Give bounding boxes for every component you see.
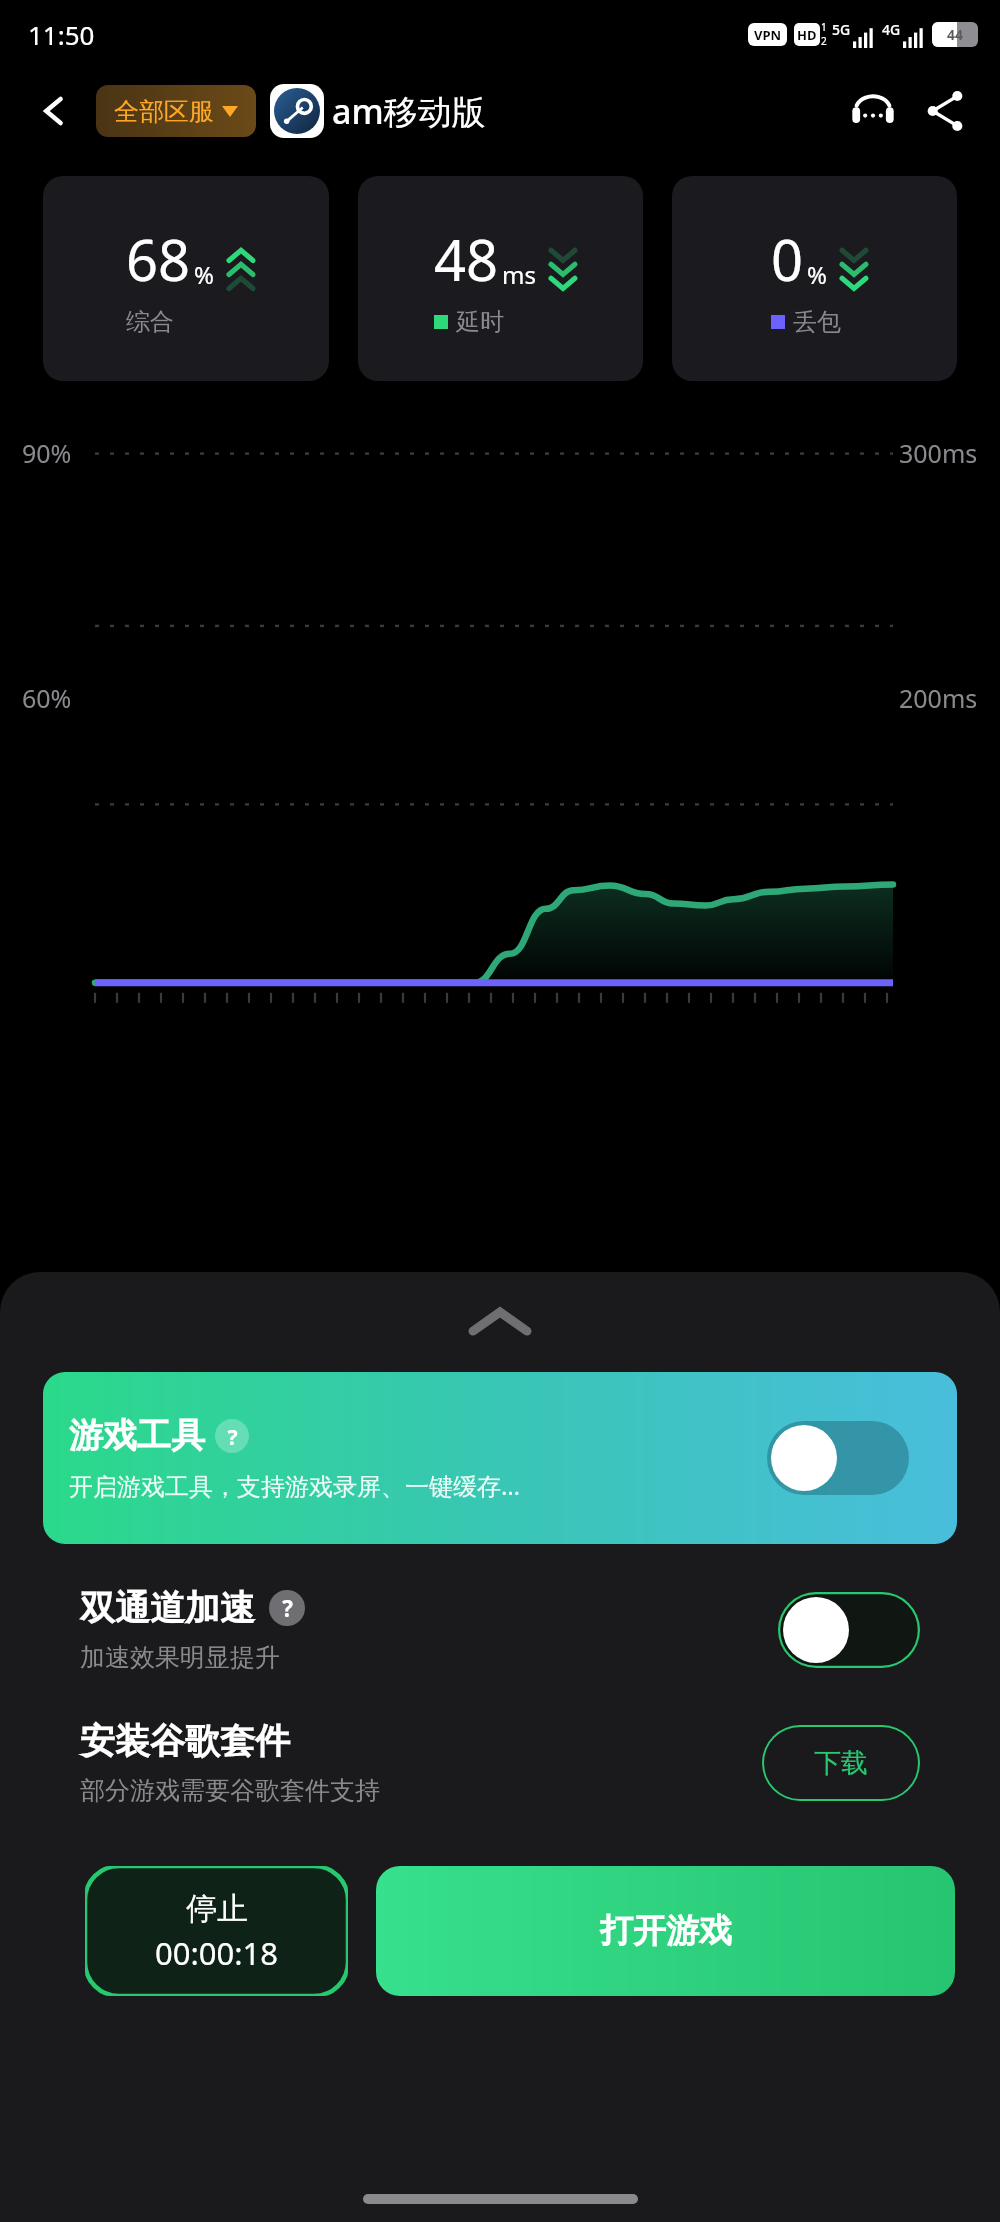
button[interactable]: 全部区服	[96, 85, 256, 137]
staticText: ?	[282, 1593, 293, 1623]
staticText: 90%	[22, 436, 72, 470]
staticText: 300ms	[899, 436, 978, 470]
staticText: 开启游戏工具，支持游戏录屏、一键缓存…	[69, 1469, 520, 1502]
staticText: 48	[434, 221, 499, 297]
staticText: %	[194, 258, 214, 291]
button[interactable]: 下载	[762, 1725, 920, 1801]
staticText: am移动版	[332, 88, 486, 134]
staticText: 游戏工具	[69, 1414, 205, 1457]
button[interactable]: 0	[672, 176, 957, 381]
staticText: 延时	[456, 307, 504, 337]
staticText: 丢包	[793, 307, 841, 337]
staticText: 部分游戏需要谷歌套件支持	[80, 1775, 380, 1806]
staticText: 00:00:18	[155, 1932, 279, 1974]
staticText: 安装谷歌套件	[80, 1719, 290, 1763]
button[interactable]: 安装谷歌套件	[0, 1719, 1000, 1806]
button[interactable]: 打开游戏	[376, 1866, 955, 1996]
staticText: ?	[227, 1422, 238, 1451]
staticText: 0	[771, 221, 804, 297]
staticText: 综合	[126, 307, 174, 337]
staticText: ms	[502, 258, 536, 291]
button[interactable]: Game tools toggle	[767, 1421, 909, 1495]
staticText: 68	[126, 221, 191, 297]
staticText: HD	[797, 26, 817, 44]
staticText: 5G	[832, 20, 851, 39]
button[interactable]: 48	[358, 176, 643, 381]
staticText: 60%	[22, 681, 72, 715]
staticText: %	[807, 258, 827, 291]
staticText: 下载	[814, 1746, 868, 1780]
staticText: 打开游戏	[600, 1910, 732, 1952]
button[interactable]: 双通道加速	[0, 1586, 1000, 1673]
button[interactable]: Collapse panel	[0, 1272, 1000, 1372]
button[interactable]: Customer support	[844, 82, 902, 140]
staticText: 44	[947, 25, 964, 44]
button[interactable]: 停止	[85, 1866, 348, 1996]
button[interactable]: Dual channel toggle	[778, 1592, 920, 1668]
staticText: 1	[821, 20, 827, 34]
staticText: 加速效果明显提升	[80, 1642, 280, 1673]
staticText: VPN	[754, 26, 782, 44]
button[interactable]: 68	[43, 176, 329, 381]
button[interactable]: Back	[26, 83, 82, 139]
button[interactable]: 游戏工具	[43, 1372, 957, 1544]
staticText: 停止	[186, 1889, 248, 1928]
staticText: 双通道加速	[80, 1586, 255, 1630]
staticText: 11:50	[28, 17, 95, 52]
staticText: 200ms	[899, 681, 978, 715]
staticText: 4G	[882, 20, 901, 39]
staticText: 全部区服	[114, 96, 214, 127]
button[interactable]: Share	[916, 82, 974, 140]
staticText: 2	[821, 34, 827, 48]
